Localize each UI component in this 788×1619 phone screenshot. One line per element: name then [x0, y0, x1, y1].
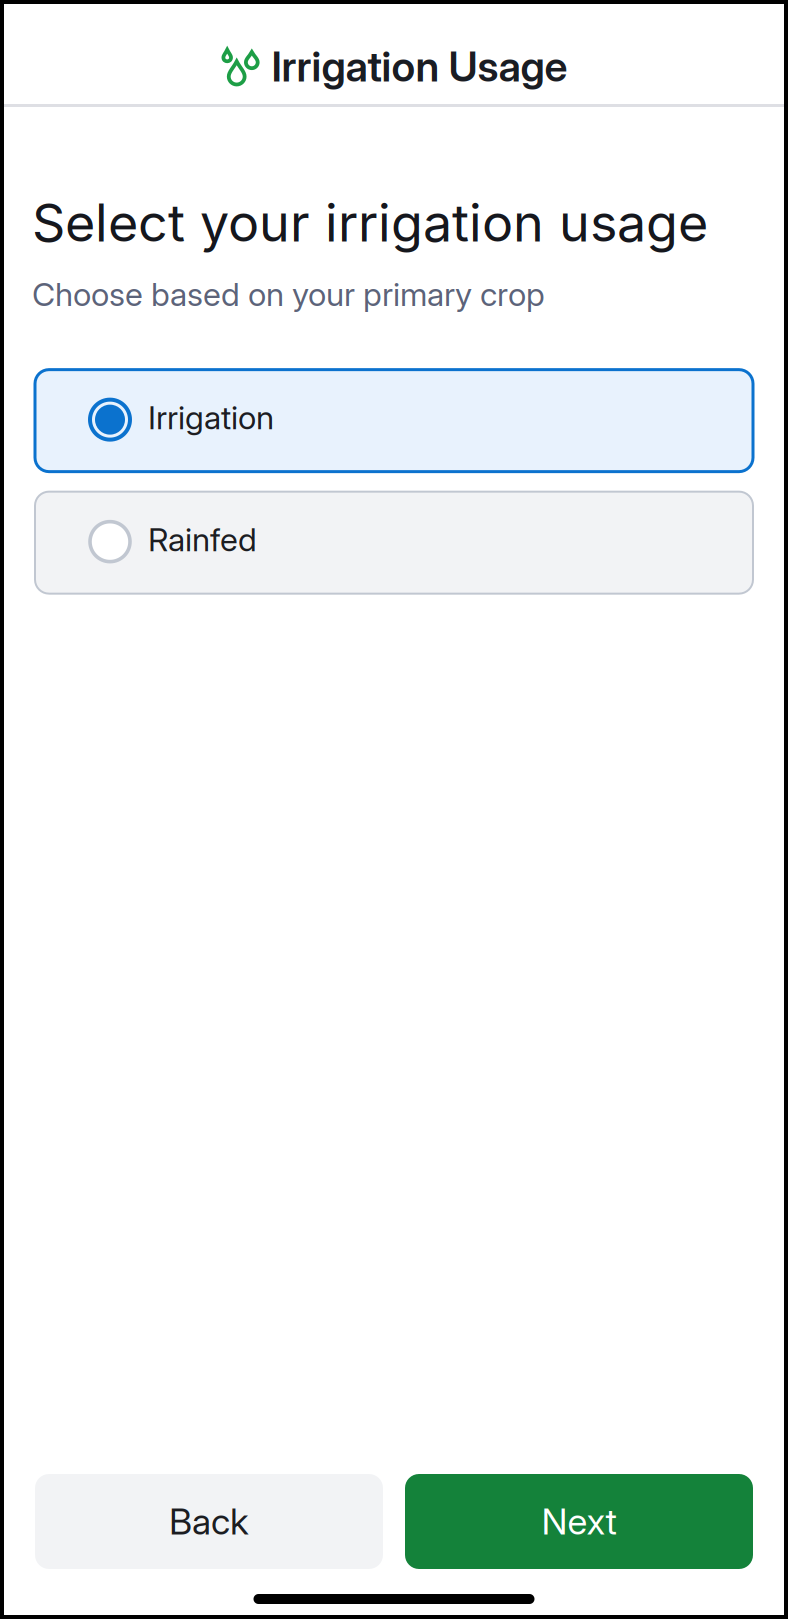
- staticText: Back: [169, 1500, 249, 1543]
- button[interactable]: Irrigation: [35, 370, 753, 472]
- button[interactable]: Next: [405, 1474, 753, 1569]
- staticText: Irrigation: [148, 398, 274, 437]
- staticText: Irrigation Usage: [271, 41, 567, 91]
- staticText: Next: [541, 1500, 616, 1543]
- staticText: Choose based on your primary crop: [32, 275, 545, 314]
- staticText: Rainfed: [148, 520, 257, 559]
- staticText: Select your irrigation usage: [32, 191, 708, 254]
- button[interactable]: Rainfed: [35, 492, 753, 594]
- button[interactable]: Back: [35, 1474, 383, 1569]
